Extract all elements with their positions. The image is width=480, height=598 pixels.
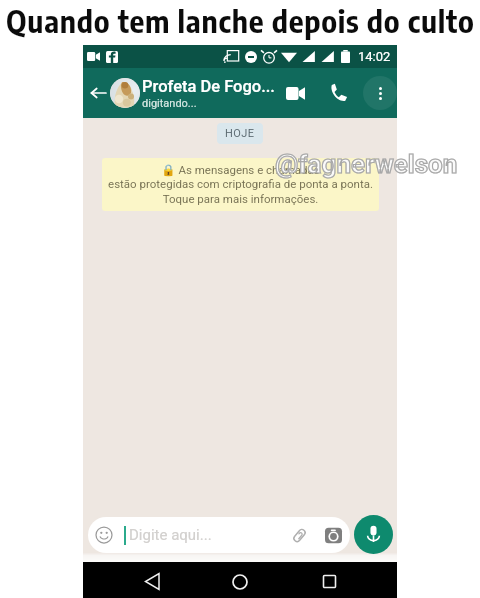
staticText: Digite aqui...	[129, 526, 212, 544]
staticText: Quando tem lanche depois do culto	[6, 1, 475, 40]
staticText: HOJE	[225, 127, 255, 140]
button[interactable]: More options	[363, 76, 397, 110]
staticText: @fagnerwelson	[275, 149, 458, 179]
button[interactable]: Digite aqui...	[88, 517, 350, 553]
staticText: 🔒 As mensagens e chamadas estão protegid…	[108, 163, 373, 206]
button[interactable]: Back	[132, 565, 172, 598]
staticText: digitando...	[142, 97, 197, 110]
button[interactable]: Back	[87, 82, 109, 104]
button[interactable]: Call	[324, 78, 354, 108]
staticText: Profeta De Fogo...	[142, 77, 275, 96]
button[interactable]: Home	[220, 565, 260, 598]
button[interactable]: Record voice message	[354, 515, 393, 554]
button[interactable]: Video call	[280, 78, 310, 108]
staticText: @fagnerwelson	[275, 149, 458, 179]
staticText: 14:02	[358, 49, 391, 64]
button[interactable]: Recent apps	[309, 565, 349, 598]
